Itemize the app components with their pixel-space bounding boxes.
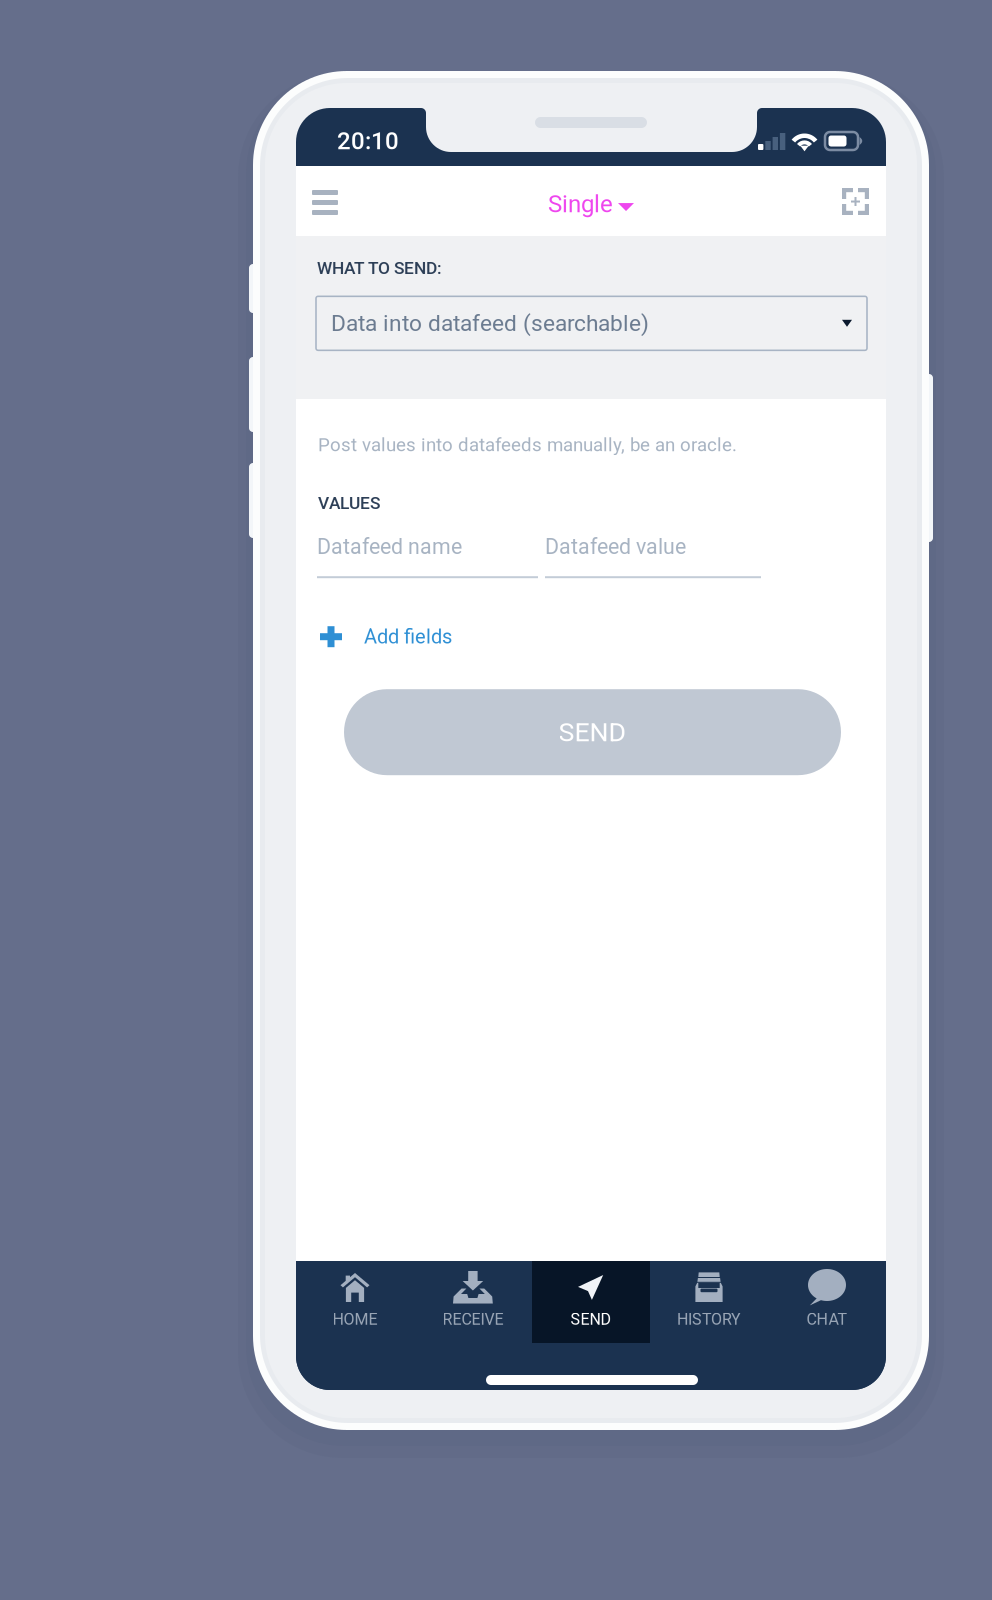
staticText: Data into datafeed (searchable) (331, 310, 649, 337)
button[interactable]: RECEIVE (414, 1261, 532, 1343)
button[interactable]: SEND (532, 1261, 650, 1343)
staticText: Datafeed name (317, 534, 462, 559)
button[interactable]: Menu (297, 175, 353, 230)
button[interactable]: HOME (296, 1261, 414, 1343)
button[interactable]: SEND (344, 689, 841, 775)
button[interactable]: Data into datafeed (searchable) (316, 296, 867, 350)
staticText: 20:10 (337, 127, 399, 155)
staticText: SEND (570, 1310, 611, 1329)
staticText: HOME (332, 1310, 377, 1329)
staticText: RECEIVE (442, 1310, 503, 1329)
staticText: Post values into datafeeds manually, be … (318, 434, 737, 456)
staticText: WHAT TO SEND: (317, 258, 442, 278)
staticText: VALUES (318, 493, 380, 513)
button[interactable]: Add fields (320, 626, 492, 647)
button[interactable]: Scan (828, 174, 883, 229)
button[interactable]: HISTORY (650, 1261, 768, 1343)
staticText: Add fields (364, 625, 452, 648)
staticText: CHAT (806, 1310, 847, 1329)
staticText: HISTORY (677, 1310, 741, 1329)
staticText: Datafeed value (545, 534, 686, 559)
button[interactable]: CHAT (768, 1261, 886, 1343)
staticText: Single (548, 190, 613, 218)
button[interactable]: Single (536, 179, 646, 229)
staticText: SEND (558, 717, 626, 748)
